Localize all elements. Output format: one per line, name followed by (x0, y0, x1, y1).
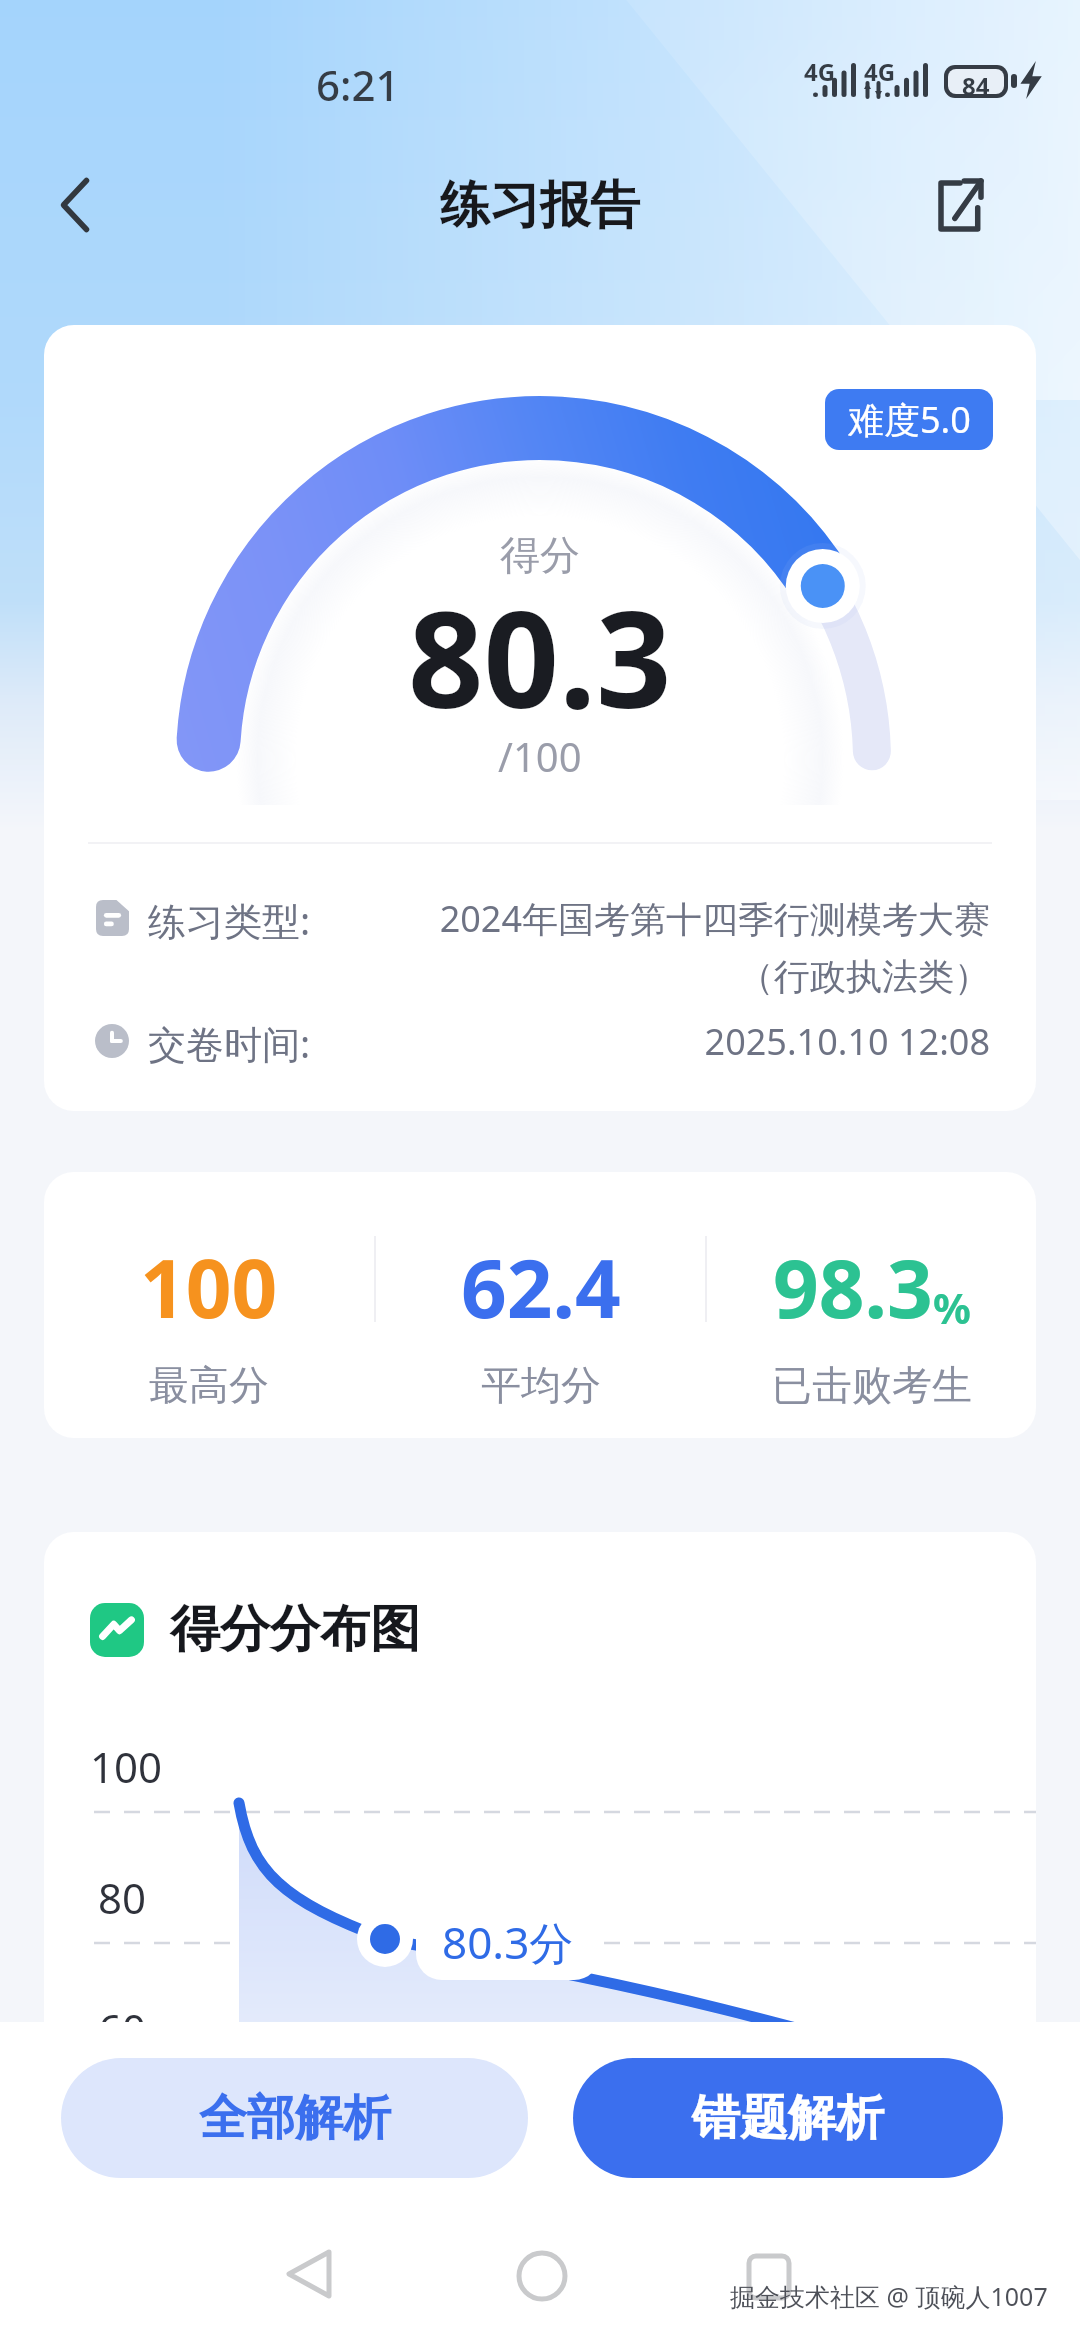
button[interactable]: Back (30, 160, 120, 250)
button[interactable]: 98.3 (707, 1232, 1036, 1410)
staticText: 练习类型: (148, 894, 311, 946)
staticText: 平均分 (481, 1360, 601, 1410)
staticText: 2024年国考第十四季行测模考大赛 （行政执法类） (439, 894, 990, 1000)
staticText: 难度5.0 (848, 395, 971, 444)
button[interactable]: 62.4 (376, 1232, 705, 1410)
button[interactable]: Back (264, 2229, 354, 2319)
staticText: 84 (962, 69, 990, 94)
button[interactable]: Home (497, 2231, 587, 2321)
button[interactable]: Share (914, 160, 1004, 250)
button[interactable]: Recents (724, 2232, 814, 2322)
staticText: 100 (90, 1738, 163, 1795)
staticText: 60 (98, 2000, 147, 2022)
staticText: 100 (140, 1232, 278, 1341)
staticText: 练习报告 (440, 174, 640, 237)
button[interactable]: 错题解析 (573, 2058, 1003, 2178)
staticText: 得分分布图 (170, 1598, 420, 1661)
staticText: 已击败考生 (772, 1360, 972, 1410)
staticText: 错题解析 (692, 2088, 884, 2148)
staticText: 得分 (500, 530, 580, 580)
staticText: 80 (98, 1869, 147, 1926)
staticText: 98.3 (773, 1232, 933, 1341)
staticText: 2025.10.10 12:08 (704, 1017, 990, 1066)
staticText: % (933, 1279, 971, 1336)
staticText: 全部解析 (199, 2088, 391, 2148)
staticText: /100 (498, 729, 582, 783)
staticText: 80.3 (408, 567, 672, 747)
staticText: 62.4 (461, 1232, 621, 1341)
button[interactable]: 全部解析 (61, 2058, 528, 2178)
staticText: 最高分 (149, 1360, 269, 1410)
staticText: 交卷时间: (148, 1017, 311, 1069)
button[interactable]: 100 (44, 1232, 374, 1410)
staticText: 6:21 (316, 56, 400, 113)
staticText: 80.3分 (442, 1912, 574, 1972)
staticText: 4G (804, 55, 836, 88)
staticText: 掘金技术社区 @ 顶碗人1007 (730, 2279, 1048, 2313)
button[interactable]: 难度5.0 (825, 389, 993, 450)
staticText: 4G (864, 55, 896, 88)
